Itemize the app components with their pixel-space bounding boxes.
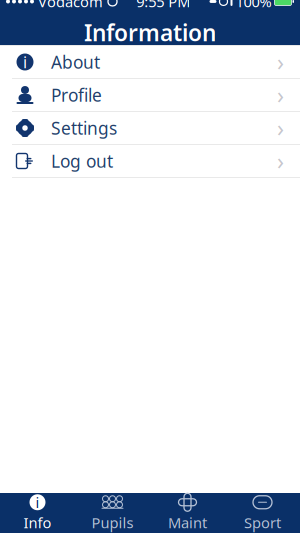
button[interactable]: Pupils bbox=[75, 493, 150, 533]
staticText: Profile bbox=[51, 83, 102, 106]
staticText: › bbox=[277, 47, 284, 77]
staticText: Sport bbox=[244, 513, 281, 532]
staticText: › bbox=[277, 80, 284, 110]
staticText: › bbox=[277, 113, 284, 143]
button[interactable]: Log out bbox=[0, 145, 300, 178]
staticText: Vodacom bbox=[38, 0, 103, 11]
button[interactable]: Info bbox=[0, 493, 75, 533]
button[interactable]: Maint bbox=[150, 493, 225, 533]
staticText: Log out bbox=[51, 149, 113, 172]
staticText: › bbox=[277, 146, 284, 176]
staticText: 100% bbox=[235, 0, 271, 11]
staticText: i bbox=[23, 51, 27, 73]
button[interactable]: Profile bbox=[0, 79, 300, 112]
staticText: i bbox=[35, 492, 39, 512]
staticText: Pupils bbox=[91, 513, 133, 532]
staticText: Info bbox=[23, 513, 51, 532]
staticText: Settings bbox=[51, 116, 117, 139]
staticText: Maint bbox=[168, 513, 207, 532]
staticText: Information bbox=[84, 17, 216, 47]
staticText: 9:55 PM bbox=[136, 0, 190, 11]
staticText: About bbox=[51, 50, 100, 73]
button[interactable]: Settings bbox=[0, 112, 300, 145]
button[interactable]: i bbox=[0, 46, 300, 79]
button[interactable]: Sport bbox=[225, 493, 300, 533]
